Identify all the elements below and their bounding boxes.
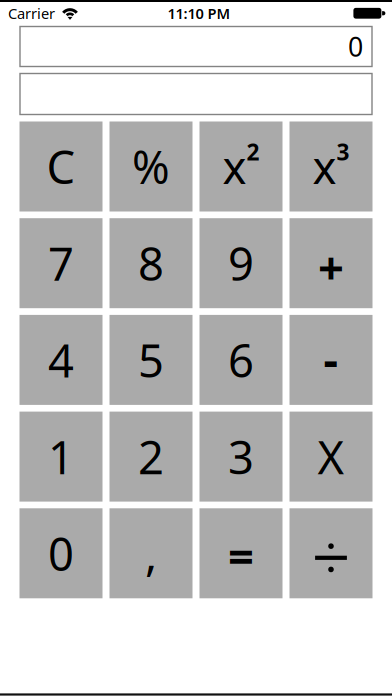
staticText: 6 <box>228 330 254 390</box>
button[interactable]: x3 <box>289 121 372 211</box>
button[interactable]: x2 <box>199 121 282 211</box>
button[interactable]: 0 <box>19 508 102 598</box>
staticText: 0 <box>348 29 363 64</box>
staticText: Carrier <box>8 3 55 23</box>
staticText: = <box>228 525 254 585</box>
button[interactable]: 6 <box>199 315 282 405</box>
staticText: 9 <box>228 233 254 293</box>
staticText: + <box>318 237 344 297</box>
button[interactable]: 7 <box>19 218 102 308</box>
button[interactable]: 5 <box>109 315 192 405</box>
button[interactable]: 1 <box>19 412 102 502</box>
button[interactable]: 3 <box>199 412 282 502</box>
staticText: 1 <box>48 426 74 487</box>
button[interactable]: 4 <box>19 315 102 405</box>
button[interactable]: % <box>109 121 192 211</box>
staticText: C <box>46 136 75 197</box>
staticText: 4 <box>48 330 74 390</box>
button[interactable] <box>20 73 372 114</box>
staticText: 7 <box>48 233 74 293</box>
button[interactable]: , <box>109 508 192 598</box>
button[interactable]: + <box>289 218 372 308</box>
staticText: 5 <box>138 330 164 390</box>
button[interactable] <box>289 508 372 598</box>
staticText: 3 <box>228 426 254 487</box>
staticText: 8 <box>138 233 164 293</box>
button[interactable]: C <box>19 121 102 211</box>
staticText: - <box>323 328 338 388</box>
staticText: 0 <box>48 523 74 583</box>
button[interactable]: X <box>289 412 372 502</box>
staticText: 2 <box>138 426 164 487</box>
button[interactable]: 9 <box>199 218 282 308</box>
button[interactable]: - <box>289 315 372 405</box>
button[interactable]: 0 <box>20 26 372 66</box>
staticText: 11:10 PM <box>167 3 230 23</box>
staticText: , <box>145 523 157 583</box>
button[interactable]: = <box>199 508 282 598</box>
staticText: X <box>317 426 344 487</box>
staticText: x2 <box>222 136 259 197</box>
button[interactable]: 2 <box>109 412 192 502</box>
button[interactable]: 8 <box>109 218 192 308</box>
staticText: % <box>132 136 170 197</box>
staticText: x3 <box>312 136 349 197</box>
